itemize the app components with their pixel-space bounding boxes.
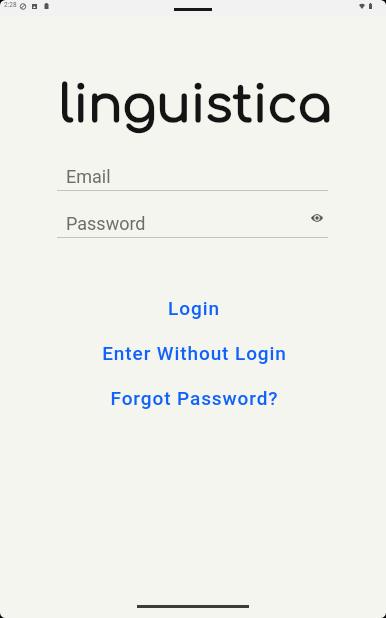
button[interactable]: Forgot Password? xyxy=(1,383,386,412)
staticText: Password xyxy=(66,213,146,234)
staticText: 2:28 xyxy=(4,1,17,9)
staticText: Forgot Password? xyxy=(110,387,279,409)
button[interactable]: Enter Without Login xyxy=(1,338,386,367)
button[interactable]: Login xyxy=(1,293,386,322)
button[interactable]: Email xyxy=(57,160,328,191)
staticText: Login xyxy=(168,297,220,319)
staticText: Enter Without Login xyxy=(102,342,287,364)
staticText: Email xyxy=(66,166,111,187)
button[interactable]: Password xyxy=(57,207,328,238)
staticText: linguistica xyxy=(59,78,332,134)
button[interactable]: Show password xyxy=(306,207,328,229)
